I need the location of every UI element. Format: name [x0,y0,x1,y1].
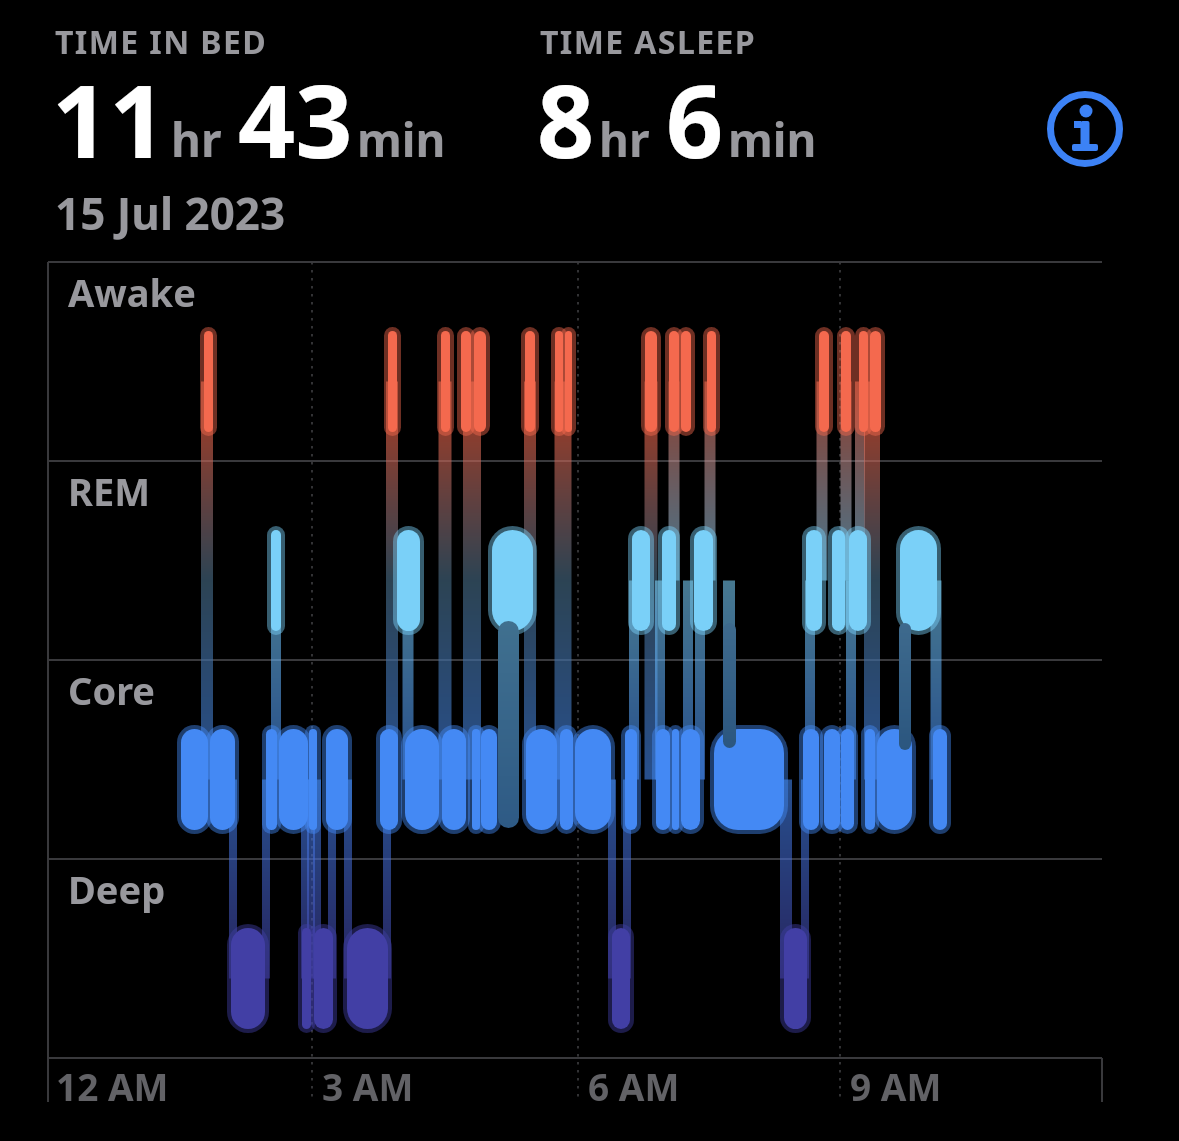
staticText: 6 [666,51,724,187]
staticText: Awake [68,266,196,318]
staticText: 9 AM [850,1061,942,1111]
staticText: 8 [537,51,595,187]
staticText: Core [68,664,156,716]
staticText: TIME IN BED [55,20,268,64]
staticText: min [357,108,446,171]
staticText: 15 Jul 2023 [55,183,286,243]
staticText: TIME ASLEEP [540,20,757,64]
staticText: 6 AM [588,1061,680,1111]
staticText: 12 AM [56,1061,169,1111]
staticText: Deep [68,863,166,915]
staticText: REM [68,465,151,517]
staticText: 3 AM [322,1061,414,1111]
staticText: hr [171,108,222,171]
staticText: 43 [238,51,353,187]
staticText: 11 [52,51,167,187]
staticText: hr [599,108,650,171]
button[interactable] [1045,89,1125,169]
staticText: min [728,108,817,171]
